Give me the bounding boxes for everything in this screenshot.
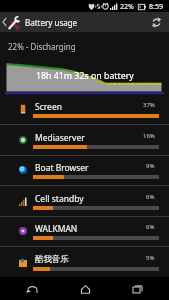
staticText: Mediaserver <box>35 132 85 144</box>
staticText: 酷我音乐 <box>35 254 69 265</box>
button[interactable]: 酷我音乐 <box>0 247 169 278</box>
staticText: 5% <box>146 254 155 262</box>
button[interactable]: Boat Browser <box>0 155 169 186</box>
button[interactable]: Home <box>65 278 105 300</box>
staticText: 22% <box>120 2 134 12</box>
staticText: 22% - Discharging <box>8 41 76 52</box>
button[interactable]: Cell standby <box>0 186 169 217</box>
button[interactable]: Navigate up <box>0 12 22 32</box>
staticText: 9% <box>146 162 155 170</box>
staticText: Boat Browser <box>35 162 89 174</box>
button[interactable]: WALKMAN <box>0 216 169 247</box>
staticText: 18h 41m 32s on battery <box>36 70 134 82</box>
staticText: 6% <box>146 223 155 231</box>
staticText: Battery usage <box>25 17 78 28</box>
staticText: Cell standby <box>35 193 84 205</box>
staticText: 6% <box>146 193 155 201</box>
staticText: 16% <box>143 132 155 140</box>
button[interactable]: Mediaserver <box>0 125 169 156</box>
button[interactable]: Screen <box>0 94 169 125</box>
staticText: 37% <box>143 101 155 109</box>
button[interactable]: Recent apps <box>117 278 157 300</box>
staticText: 8:59 <box>149 2 163 12</box>
button[interactable]: Back <box>12 278 52 300</box>
staticText: Screen <box>35 101 62 113</box>
button[interactable]: Refresh <box>147 12 169 32</box>
staticText: WALKMAN <box>35 223 78 235</box>
